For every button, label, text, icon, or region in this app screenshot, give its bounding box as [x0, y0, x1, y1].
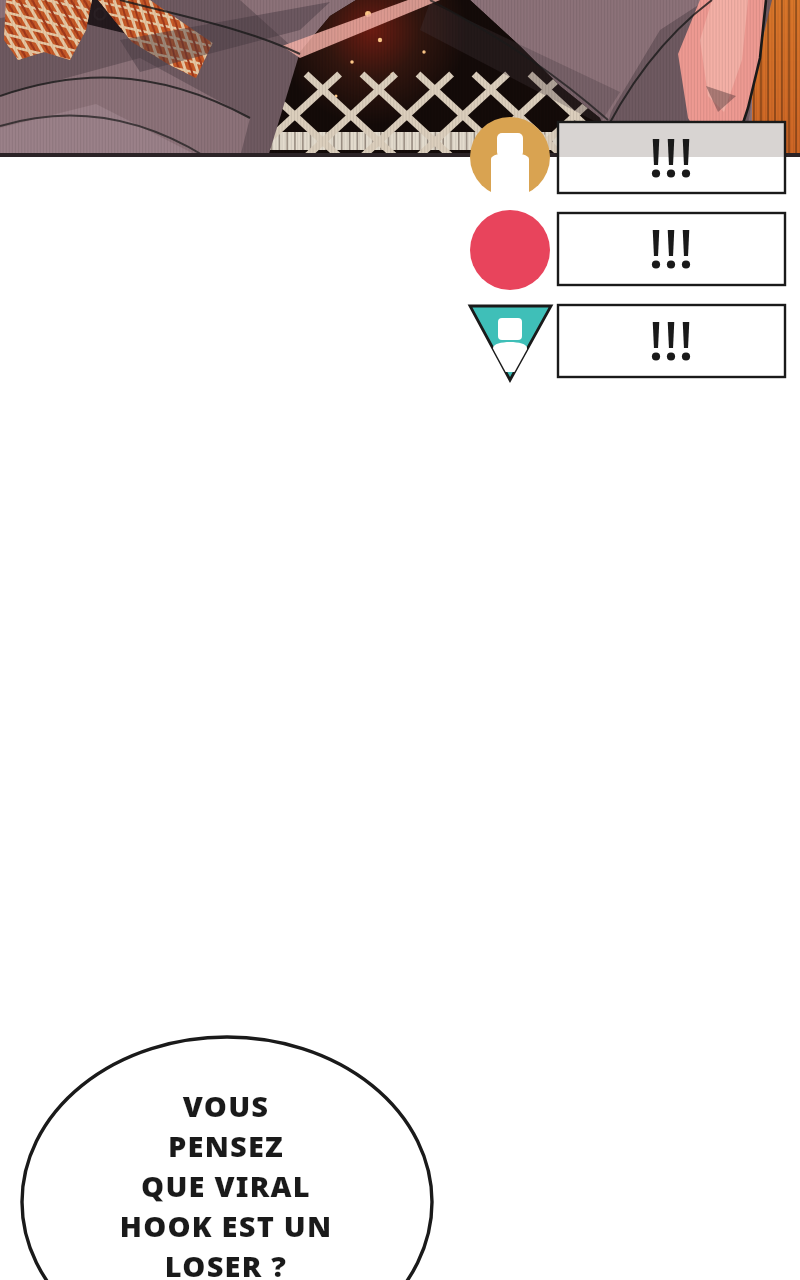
button[interactable]: Message from first speaker	[470, 122, 785, 193]
button[interactable]: Speech balloon: Vous pensez que Viral Ho…	[22, 1037, 432, 1280]
button[interactable]: Message from third speaker	[470, 305, 785, 377]
button[interactable]: Message from GUK	[470, 213, 785, 285]
